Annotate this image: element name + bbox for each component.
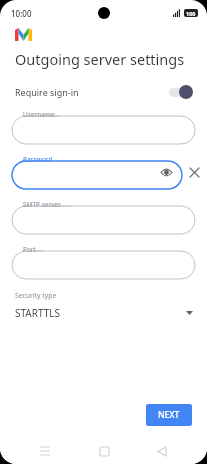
staticText: Username [23, 110, 55, 119]
button[interactable]: Username [12, 110, 195, 144]
button[interactable]: Security type [0, 289, 207, 320]
button[interactable]: Recents [32, 438, 58, 464]
button[interactable]: Home [91, 438, 117, 464]
staticText: STARTTLS [15, 306, 61, 320]
staticText: 10:00 [11, 8, 32, 19]
staticText: NEXT [158, 409, 180, 421]
staticText: SMTP server [23, 200, 61, 209]
button[interactable]: Password [12, 155, 182, 189]
button[interactable]: Require sign-in [0, 82, 207, 102]
button[interactable]: NEXT [146, 404, 192, 426]
other: Show password [161, 167, 172, 178]
staticText: 100 [186, 10, 196, 17]
staticText: Port [23, 245, 36, 254]
button[interactable]: Port [12, 245, 195, 279]
button[interactable]: Back [149, 438, 175, 464]
staticText: Require sign-in [15, 86, 79, 98]
staticText: Security type [15, 291, 57, 300]
staticText: Outgoing server settings [15, 49, 185, 69]
other: Require sign-in toggle [167, 85, 193, 99]
button[interactable]: SMTP server [12, 200, 195, 234]
button[interactable]: Clear [186, 164, 202, 180]
staticText: Password [23, 155, 53, 164]
